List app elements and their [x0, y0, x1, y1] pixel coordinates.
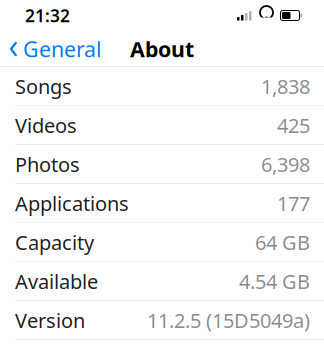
button[interactable]: Photos — [0, 145, 324, 184]
staticText: 64 GB — [255, 229, 310, 256]
button[interactable]: Capacity — [0, 223, 324, 262]
staticText: 177 — [277, 190, 310, 217]
staticText: Videos — [15, 112, 77, 139]
staticText: 425 — [277, 112, 310, 139]
staticText: 4.54 GB — [239, 268, 310, 295]
staticText: 21:32 — [25, 4, 70, 27]
staticText: 11.2.5 (15D5049a) — [147, 307, 310, 334]
staticText: 6,398 — [261, 151, 310, 178]
staticText: 1,838 — [261, 73, 310, 100]
button[interactable]: Version — [0, 301, 324, 340]
staticText: Songs — [15, 73, 72, 100]
button[interactable]: General — [0, 29, 102, 69]
staticText: Photos — [15, 151, 80, 178]
staticText: Applications — [15, 190, 129, 217]
button[interactable]: Applications — [0, 184, 324, 223]
staticText: About — [130, 35, 194, 63]
button[interactable]: Videos — [0, 106, 324, 145]
button[interactable]: Songs — [0, 67, 324, 106]
staticText: Capacity — [15, 229, 94, 256]
button[interactable]: Available — [0, 262, 324, 301]
staticText: General — [23, 35, 102, 63]
staticText: Version — [15, 307, 85, 334]
staticText: Available — [15, 268, 98, 295]
